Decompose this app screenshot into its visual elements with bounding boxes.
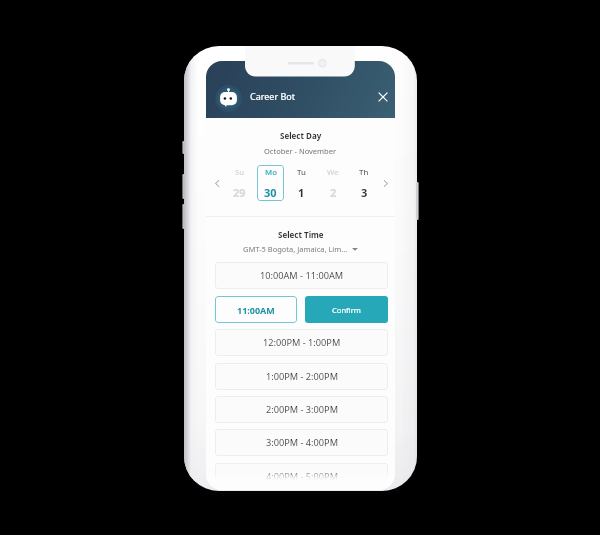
- button[interactable]: 10:00AM - 11:00AM: [215, 262, 388, 289]
- staticText: 3: [361, 185, 368, 200]
- staticText: Su: [235, 167, 245, 178]
- staticText: Mo: [265, 167, 277, 178]
- button[interactable]: 3:00PM - 4:00PM: [215, 429, 388, 456]
- staticText: Tu: [297, 167, 306, 178]
- staticText: Confirm: [332, 305, 361, 315]
- button[interactable]: Close: [375, 89, 391, 105]
- staticText: Select Time: [278, 229, 324, 240]
- button[interactable]: Th: [350, 165, 377, 201]
- staticText: 1: [298, 185, 305, 200]
- staticText: 1:00PM - 2:00PM: [266, 370, 338, 383]
- button[interactable]: 1:00PM - 2:00PM: [215, 363, 388, 390]
- staticText: 12:00PM - 1:00PM: [263, 336, 341, 349]
- button[interactable]: Confirm: [305, 296, 388, 323]
- staticText: GMT-5 Bogota, Jamaica, Lim...: [243, 244, 348, 254]
- staticText: October - November: [264, 146, 337, 156]
- staticText: 29: [233, 185, 246, 200]
- staticText: 30: [264, 185, 277, 200]
- staticText: Select Day: [280, 130, 322, 141]
- button[interactable]: Su: [226, 165, 253, 201]
- button[interactable]: 4:00PM - 5:00PM: [215, 463, 388, 490]
- staticText: Th: [359, 167, 369, 178]
- button[interactable]: 2:00PM - 3:00PM: [215, 396, 388, 423]
- staticText: 11:00AM: [237, 304, 275, 316]
- button[interactable]: Tu: [288, 165, 315, 201]
- staticText: Career Bot: [250, 90, 296, 102]
- button[interactable]: 11:00AM: [215, 296, 297, 323]
- staticText: 3:00PM - 4:00PM: [266, 436, 338, 449]
- button[interactable]: Previous week: [208, 174, 226, 192]
- staticText: 10:00AM - 11:00AM: [260, 269, 344, 282]
- staticText: 2: [330, 185, 337, 200]
- staticText: 2:00PM - 3:00PM: [266, 403, 338, 416]
- button[interactable]: We: [319, 165, 346, 201]
- button[interactable]: Next week: [377, 174, 393, 192]
- button[interactable]: 12:00PM - 1:00PM: [215, 329, 388, 356]
- staticText: We: [327, 167, 339, 178]
- button[interactable]: Mo: [257, 165, 284, 201]
- staticText: 4:00PM - 5:00PM: [266, 470, 338, 483]
